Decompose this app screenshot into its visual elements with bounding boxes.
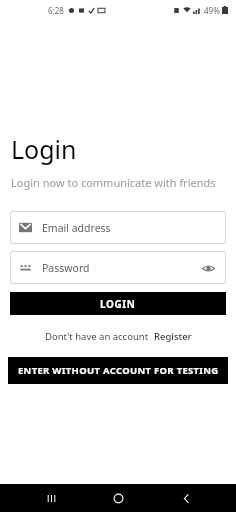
button[interactable]: ENTER WITHOUT ACCOUNT FOR TESTING	[8, 357, 228, 384]
staticText: Email address	[42, 221, 111, 235]
staticText: ENTER WITHOUT ACCOUNT FOR TESTING	[18, 364, 219, 377]
staticText: 49%	[204, 5, 220, 16]
staticText: LOGIN	[100, 297, 136, 311]
button[interactable]: Email address	[10, 211, 226, 244]
button[interactable]: Password	[10, 251, 226, 284]
button[interactable]: Register	[154, 330, 192, 343]
staticText: 6:28	[48, 5, 64, 16]
button[interactable]: Back	[169, 484, 203, 512]
button[interactable]: LOGIN	[10, 292, 226, 315]
button[interactable]: Show password	[199, 259, 217, 277]
staticText: Login	[11, 132, 77, 166]
staticText: Password	[42, 261, 90, 275]
staticText: Login now to communicate with friends	[11, 175, 216, 190]
button[interactable]: Home	[101, 484, 135, 512]
staticText: Register	[154, 330, 192, 343]
staticText: Dont't have an account	[45, 330, 149, 343]
button[interactable]: Recent apps	[34, 484, 68, 512]
